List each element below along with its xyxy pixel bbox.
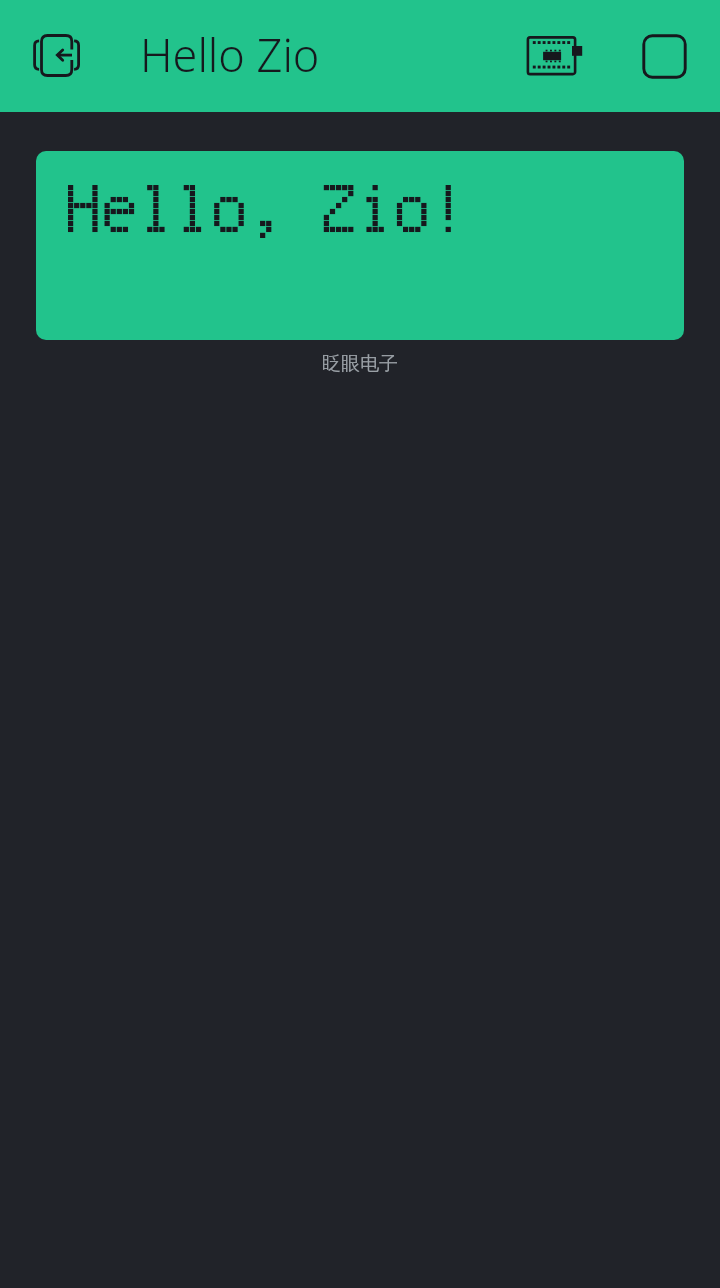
button[interactable] <box>36 151 684 340</box>
button[interactable]: Back <box>11 11 101 101</box>
staticText: Hello Zio <box>140 24 320 85</box>
button[interactable]: Select development board <box>507 11 597 101</box>
button[interactable]: Stop <box>619 11 709 101</box>
staticText: 眨眼电子 <box>0 352 720 376</box>
